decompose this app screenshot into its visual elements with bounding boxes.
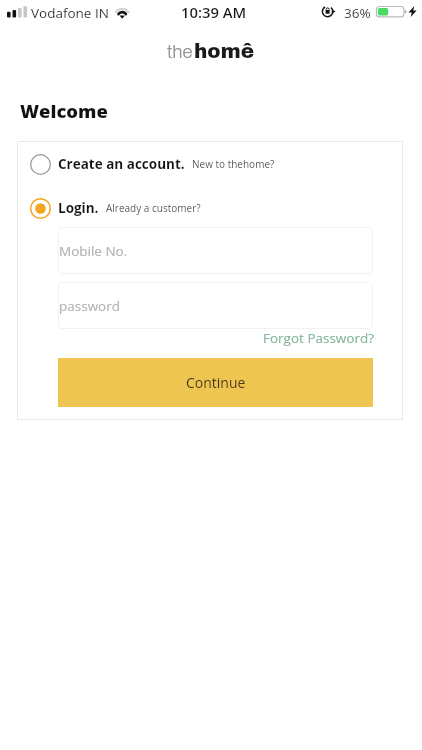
- staticText: the: [167, 42, 193, 62]
- staticText: Vodafone IN: [31, 4, 109, 22]
- staticText: New to thehome?: [192, 157, 275, 171]
- button[interactable]: Mobile No.: [58, 227, 373, 274]
- staticText: Already a customer?: [106, 201, 201, 215]
- staticText: Continue: [186, 373, 246, 392]
- staticText: homê: [194, 40, 255, 62]
- button[interactable]: Forgot Password?: [263, 329, 375, 347]
- staticText: password: [59, 297, 120, 315]
- staticText: Welcome: [20, 98, 108, 123]
- button[interactable]: Create an account.: [17, 150, 403, 178]
- staticText: Create an account.: [58, 155, 185, 173]
- staticText: 36%: [344, 4, 371, 22]
- other: Rotation lock: [322, 4, 338, 19]
- staticText: Login.: [58, 199, 99, 217]
- button[interactable]: Login.: [17, 194, 403, 222]
- staticText: 10:39 AM: [181, 2, 247, 22]
- staticText: Mobile No.: [59, 242, 128, 260]
- button[interactable]: password: [58, 282, 373, 329]
- button[interactable]: Continue: [58, 358, 373, 407]
